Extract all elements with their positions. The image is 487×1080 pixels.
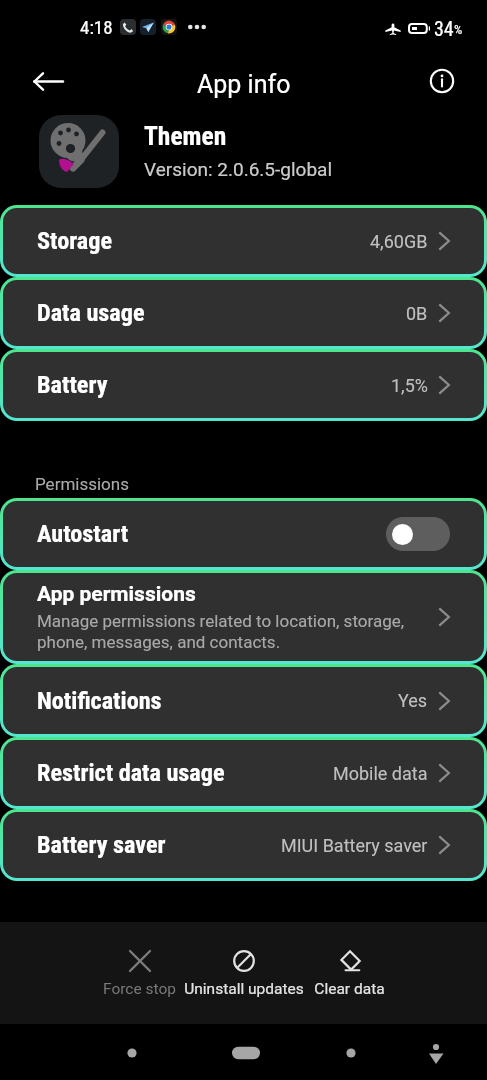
button[interactable]: Battery saver [3,812,484,878]
staticText: Permissions [35,474,129,494]
staticText: Manage permissions related to location, … [37,611,405,653]
button[interactable]: Restrict data usage [3,740,484,806]
staticText: Mobile data [333,763,428,784]
button[interactable]: Force stop [79,922,199,1024]
staticText: 34 [434,17,454,40]
button[interactable]: Autostart toggle [386,517,450,551]
button[interactable]: Clear data [289,922,409,1024]
staticText: Clear data [314,980,385,998]
staticText: 4:18 [80,16,113,38]
staticText: Battery saver [37,831,166,859]
staticText: Battery [37,371,108,399]
staticText: App permissions [37,582,196,607]
staticText: App info [197,70,291,99]
staticText: Uninstall updates [184,980,304,998]
staticText: 1,5% [391,375,428,396]
button[interactable]: Notifications [3,667,484,734]
staticText: Notifications [37,687,162,715]
staticText: Yes [398,690,428,711]
button[interactable]: Data usage [3,280,484,346]
button[interactable]: Storage [3,208,484,274]
button[interactable]: App permissions [3,573,484,661]
button[interactable]: Battery [3,352,484,418]
staticText: 0B [406,303,428,324]
staticText: Force stop [103,980,176,998]
button[interactable]: Back [26,59,70,103]
staticText: MIUI Battery saver [281,835,428,856]
staticText: Autostart [37,520,129,548]
button[interactable]: About app [420,59,464,103]
staticText: % [454,22,463,37]
staticText: 4,60GB [370,231,428,252]
button[interactable]: Autostart [3,501,484,567]
button[interactable]: Uninstall updates [184,922,304,1024]
staticText: Data usage [37,299,145,327]
staticText: Restrict data usage [37,759,225,787]
staticText: Version: 2.0.6.5-global [144,158,333,180]
staticText: Themen [144,121,227,151]
staticText: Storage [37,227,112,255]
